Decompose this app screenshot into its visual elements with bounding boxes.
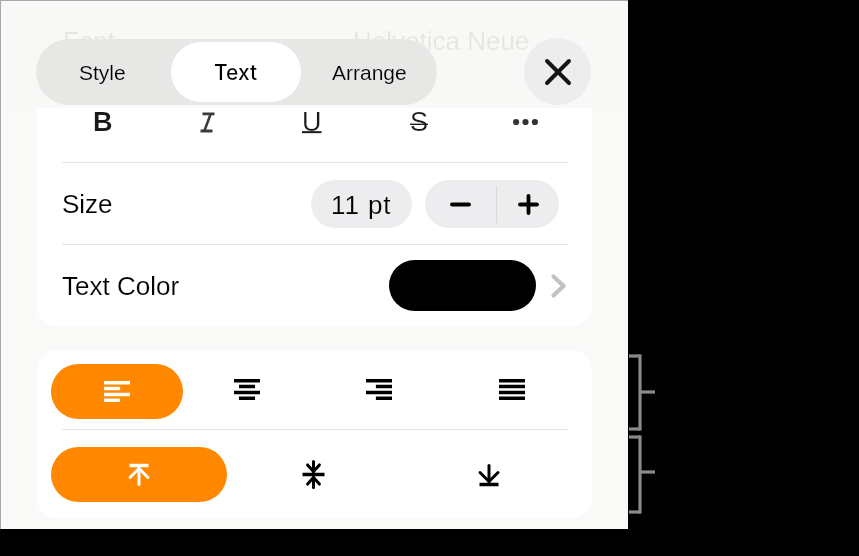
button[interactable]: Decrease size	[425, 180, 496, 228]
button[interactable]: S	[383, 92, 455, 152]
button[interactable]: Align middle	[277, 435, 349, 514]
button[interactable]: Text color	[389, 260, 536, 311]
button[interactable]: Align top	[51, 447, 227, 502]
staticText: S	[410, 107, 429, 137]
button[interactable]: Increase size	[497, 180, 559, 228]
button[interactable]: Align bottom	[453, 435, 525, 514]
staticText: Style	[79, 61, 126, 84]
staticText: Text Color	[62, 271, 180, 300]
button[interactable]: More options	[489, 92, 561, 152]
button[interactable]: Text	[169, 39, 303, 105]
staticText: Text	[214, 60, 258, 85]
staticText: 11 pt	[331, 190, 392, 219]
button[interactable]: U	[276, 92, 348, 152]
button[interactable]: Align right	[343, 350, 415, 429]
button[interactable]: 11 pt	[311, 180, 412, 228]
button[interactable]: B	[67, 92, 139, 152]
button[interactable]: Justify	[476, 350, 548, 429]
staticText: Size	[62, 189, 113, 218]
button[interactable]: Italic	[171, 92, 243, 152]
staticText: Arrange	[332, 61, 407, 84]
button[interactable]: Arrange	[303, 39, 436, 105]
button[interactable]: Close	[524, 38, 591, 105]
staticText: U	[302, 107, 322, 137]
staticText: Font	[63, 26, 116, 50]
button[interactable]: Align center	[211, 350, 283, 429]
button[interactable]: Style	[36, 39, 169, 105]
staticText: Helvetica Neue	[353, 26, 530, 50]
button[interactable]: Align left	[51, 364, 183, 419]
staticText: B	[93, 107, 113, 137]
